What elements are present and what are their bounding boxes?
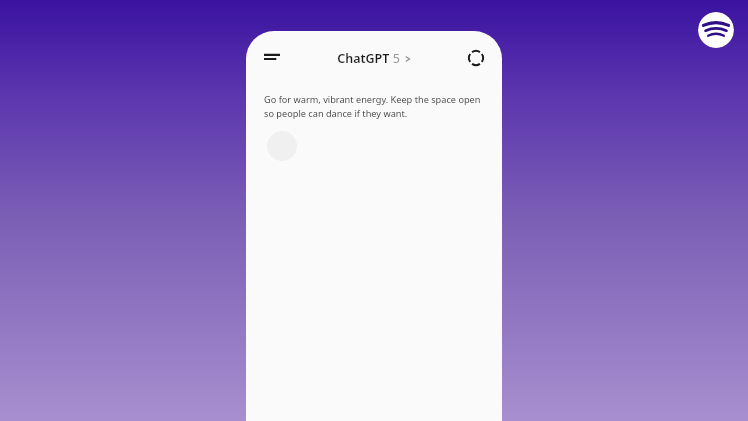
staticText: ChatGPT 5 <box>337 50 400 67</box>
button[interactable]: Profile <box>267 131 297 161</box>
button[interactable]: New chat <box>460 42 492 74</box>
button[interactable]: ChatGPT 5 <box>331 46 418 71</box>
button[interactable]: Menu <box>256 42 288 74</box>
button[interactable]: Spotify <box>698 12 734 48</box>
staticText: Go for warm, vibrant energy. Keep the sp… <box>264 93 488 120</box>
